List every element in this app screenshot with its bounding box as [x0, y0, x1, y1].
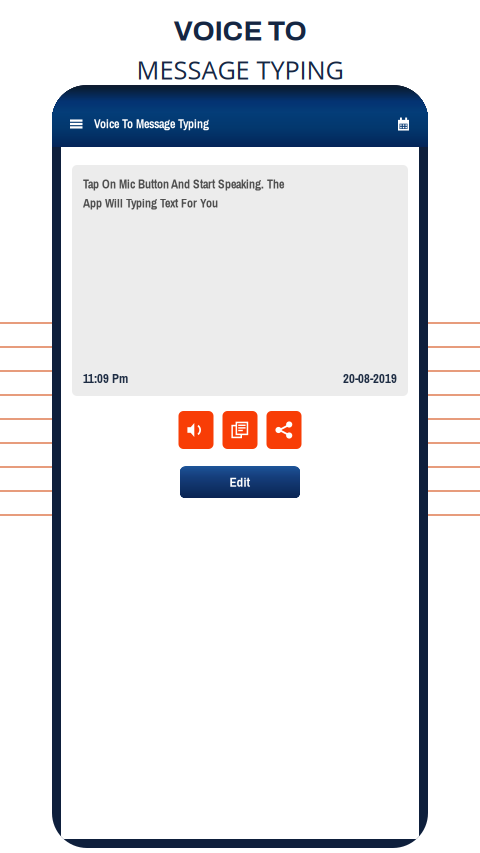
button[interactable]: Edit: [180, 466, 300, 498]
staticText: 11:09 Pm: [83, 370, 128, 387]
staticText: 20-08-2019: [343, 370, 397, 387]
staticText: VOICE TO: [173, 16, 306, 46]
button[interactable]: Calendar: [390, 112, 409, 136]
staticText: Tap On Mic Button And Start Speaking. Th…: [83, 176, 284, 192]
button[interactable]: Copy: [222, 411, 257, 449]
button[interactable]: Menu: [70, 112, 89, 136]
staticText: MESSAGE TYPING: [136, 52, 343, 87]
staticText: Voice To Message Typing: [94, 116, 209, 132]
button[interactable]: Speak: [178, 411, 213, 449]
staticText: App Will Typing Text For You: [83, 195, 218, 211]
staticText: Edit: [229, 473, 250, 491]
button[interactable]: Share: [266, 411, 301, 449]
